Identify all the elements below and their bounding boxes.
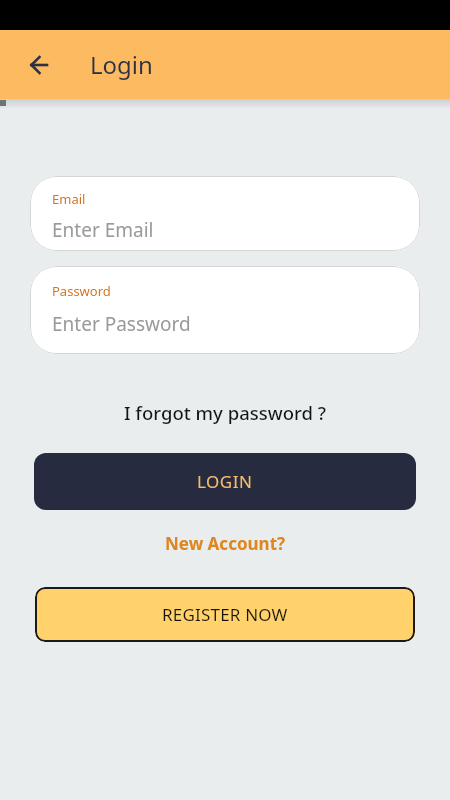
button[interactable]: Password bbox=[30, 266, 420, 354]
staticText: Login bbox=[90, 48, 153, 81]
staticText: Email bbox=[52, 190, 86, 208]
staticText: LOGIN bbox=[197, 470, 253, 493]
staticText: REGISTER NOW bbox=[162, 603, 288, 626]
button[interactable]: REGISTER NOW bbox=[35, 587, 415, 642]
button[interactable]: Email bbox=[30, 176, 420, 251]
button[interactable]: LOGIN bbox=[34, 453, 416, 510]
button[interactable]: New Account? bbox=[165, 532, 286, 555]
button[interactable]: I forgot my password ? bbox=[124, 400, 326, 425]
staticText: Enter Password bbox=[52, 311, 191, 337]
staticText: Enter Email bbox=[52, 217, 154, 243]
button[interactable] bbox=[15, 41, 63, 89]
staticText: Password bbox=[52, 282, 111, 300]
